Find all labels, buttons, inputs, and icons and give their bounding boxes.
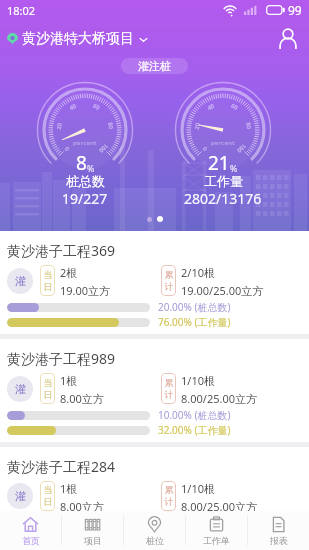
staticText: % — [230, 162, 238, 174]
button[interactable]: 灌注桩 — [121, 58, 188, 74]
staticText: 8.00/25.00立方 — [181, 391, 258, 404]
staticText: 灌 — [15, 382, 26, 396]
staticText: 首页 — [22, 535, 40, 546]
staticText: 当日 — [43, 377, 53, 401]
staticText: 19/227 — [62, 189, 108, 208]
staticText: 灌 — [15, 489, 26, 503]
staticText: 灌 — [15, 274, 26, 288]
staticText: 21 — [208, 150, 230, 176]
staticText: 黄沙港子工程989 — [7, 349, 116, 368]
button[interactable]: 黄沙港子工程369 — [0, 231, 309, 334]
staticText: 灌注桩 — [138, 59, 171, 73]
staticText: 报表 — [270, 535, 288, 546]
staticText: 8.00/25.00立方 — [181, 499, 258, 511]
staticText: 工作量 — [204, 173, 243, 189]
staticText: 2/10根 — [181, 265, 215, 280]
staticText: 工作单 — [203, 535, 230, 546]
staticText: 8 — [76, 150, 87, 176]
staticText: 当日 — [43, 269, 53, 293]
button[interactable]: Account — [274, 25, 302, 53]
staticText: 8.00立方 — [60, 499, 104, 511]
staticText: 2802/13176 — [184, 189, 262, 208]
staticText: 32.00% (工作量) — [158, 423, 231, 437]
staticText: 19.00立方 — [60, 283, 111, 296]
button[interactable]: 报表 — [248, 511, 309, 550]
button[interactable]: 工作单 — [186, 511, 247, 550]
staticText: 桩位 — [146, 535, 164, 546]
staticText: 8.00立方 — [60, 391, 104, 404]
staticText: 76.00% (工作量) — [158, 315, 231, 329]
button[interactable]: 首页 — [0, 511, 61, 550]
button[interactable]: 黄沙港子工程989 — [0, 339, 309, 442]
staticText: 10.00% (桩总数) — [158, 408, 231, 422]
button[interactable]: 黄沙港特大桥项目 — [7, 26, 148, 52]
staticText: 黄沙港特大桥项目 — [22, 30, 134, 48]
button[interactable]: 项目 — [62, 511, 123, 550]
staticText: 黄沙港子工程369 — [7, 241, 116, 260]
staticText: 20.00% (桩总数) — [158, 300, 231, 314]
staticText: 累计 — [164, 377, 174, 401]
staticText: 累计 — [164, 484, 174, 508]
staticText: 18:02 — [7, 3, 36, 18]
staticText: 累计 — [164, 269, 174, 293]
staticText: 1/10根 — [181, 481, 215, 496]
button[interactable]: 黄沙港子工程284 — [0, 447, 309, 511]
staticText: 99 — [288, 2, 302, 18]
staticText: 2根 — [60, 265, 78, 280]
staticText: 1根 — [60, 373, 78, 388]
staticText: 1/10根 — [181, 373, 215, 388]
staticText: 19.00/25.00立方 — [181, 283, 264, 296]
staticText: 桩总数 — [66, 173, 105, 189]
staticText: percent — [73, 139, 97, 147]
staticText: 黄沙港子工程284 — [7, 457, 116, 476]
staticText: % — [87, 162, 95, 174]
staticText: 项目 — [84, 535, 102, 546]
staticText: percent — [211, 139, 235, 147]
button[interactable]: 桩位 — [124, 511, 185, 550]
staticText: 1根 — [60, 481, 78, 496]
staticText: 当日 — [43, 484, 53, 508]
